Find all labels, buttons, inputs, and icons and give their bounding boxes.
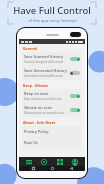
- staticText: General: [23, 46, 37, 51]
- staticText: Generated content will be saved: [24, 74, 64, 78]
- button[interactable]: On: [70, 94, 80, 98]
- button[interactable]: On: [70, 108, 80, 112]
- staticText: Privacy Policy: [24, 129, 49, 134]
- button[interactable]: Scan: [23, 157, 35, 166]
- button[interactable]: Vibrate on scan: [22, 103, 82, 117]
- button[interactable]: Save Generated History: [22, 66, 82, 80]
- button[interactable]: Privacy Policy: [22, 126, 82, 137]
- staticText: of this app using Settings!: [28, 18, 77, 23]
- staticText: Vibrate on scan: [24, 105, 52, 110]
- staticText: About - Info Sheet: [23, 120, 56, 125]
- staticText: Have Full Control: [13, 4, 91, 17]
- button[interactable]: Recents: [28, 166, 38, 171]
- button[interactable]: Off: [70, 71, 80, 75]
- staticText: Save Scanned History: [24, 54, 63, 59]
- staticText: Beep - Vibrate: [23, 83, 49, 88]
- staticText: Save Generated History: [24, 68, 67, 73]
- button[interactable]: Back: [66, 166, 76, 171]
- button[interactable]: History: [38, 157, 50, 166]
- button[interactable]: On: [70, 57, 80, 61]
- button[interactable]: Create: [54, 157, 66, 166]
- staticText: Vibrate phone on successful scan: [24, 111, 65, 115]
- button[interactable]: Home: [47, 166, 57, 171]
- button[interactable]: Save Scanned History: [22, 52, 82, 66]
- staticText: Rate Us: [24, 140, 38, 145]
- staticText: Beep sound on successful scan: [24, 97, 62, 101]
- button[interactable]: Settings: [69, 157, 81, 166]
- staticText: Beep on scan: [24, 91, 49, 96]
- button[interactable]: Beep on scan: [22, 89, 82, 103]
- staticText: Scanned, designed will be saved: [24, 60, 64, 64]
- button[interactable]: Rate Us: [22, 137, 82, 148]
